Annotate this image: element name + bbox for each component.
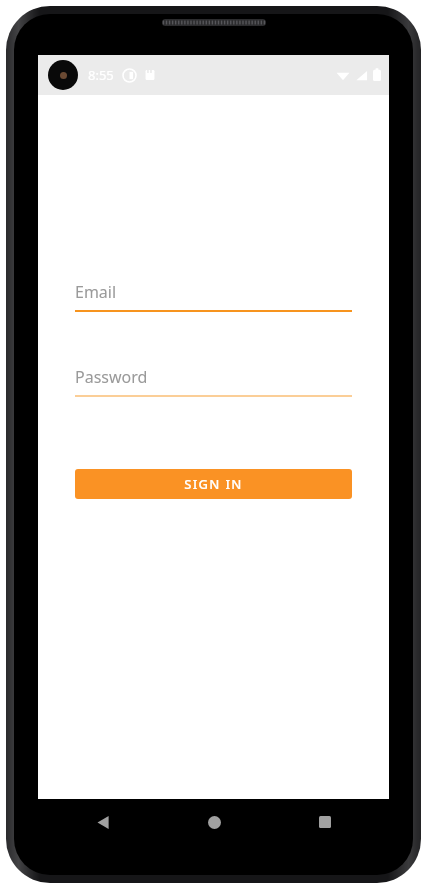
button[interactable]: Home [193,801,235,843]
button[interactable]: SIGN IN [75,469,352,499]
staticText: SIGN IN [184,475,243,493]
button[interactable]: Password [75,366,352,397]
staticText: Email [75,281,117,303]
staticText: Password [75,366,148,388]
button[interactable]: Email [75,281,352,312]
staticText: 8:55 [88,66,114,84]
button[interactable]: Recent apps [304,801,346,843]
button[interactable]: Back [82,801,124,843]
